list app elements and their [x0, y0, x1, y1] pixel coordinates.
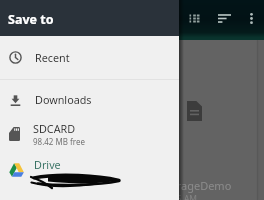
staticText: SDCARD	[33, 121, 76, 136]
staticText: 10:35 AM	[160, 193, 198, 200]
staticText: Save to	[8, 11, 54, 28]
button[interactable]: Grid view	[182, 6, 206, 30]
button[interactable]: More options	[239, 6, 263, 30]
button[interactable]: Downloads	[0, 86, 179, 113]
staticText: 98.42 MB free	[33, 136, 85, 147]
button[interactable]: Sort	[212, 6, 236, 30]
staticText: Downloads	[35, 92, 92, 107]
staticText: StorageDemo	[160, 178, 232, 193]
button[interactable]: SDCARD	[0, 120, 179, 147]
staticText: Recent	[35, 50, 70, 65]
button[interactable]: Drive	[0, 156, 179, 183]
button[interactable]: Recent	[0, 44, 179, 71]
staticText: Drive	[34, 157, 61, 172]
